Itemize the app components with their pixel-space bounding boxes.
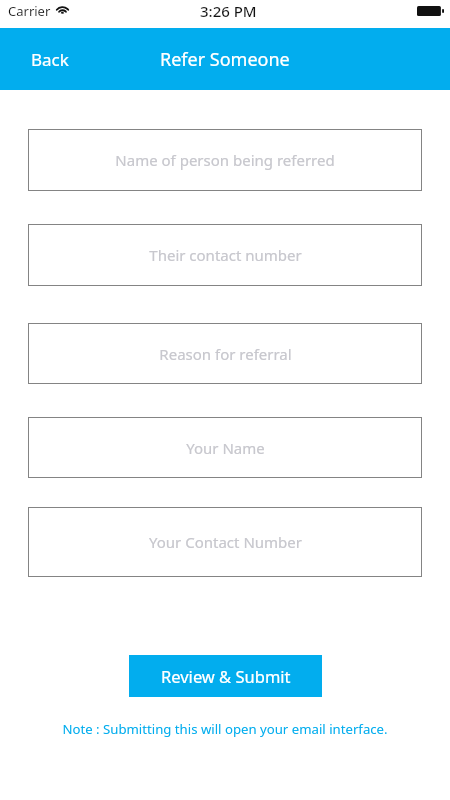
staticText: Name of person being referred (115, 150, 335, 170)
button[interactable]: Reason for referral (28, 323, 422, 384)
staticText: Reason for referral (159, 344, 292, 364)
button[interactable]: Review & Submit (129, 655, 322, 697)
button[interactable]: Back (0, 38, 89, 81)
staticText: Your Name (186, 438, 265, 458)
button[interactable]: Your Name (28, 417, 422, 478)
staticText: 3:26 PM (200, 1, 257, 21)
other: Wi-Fi (54, 2, 71, 14)
other: Battery (417, 6, 444, 16)
button[interactable]: Your Contact Number (28, 507, 422, 577)
staticText: Your Contact Number (149, 532, 302, 552)
staticText: Review & Submit (161, 665, 291, 687)
staticText: Carrier (8, 2, 51, 20)
button[interactable]: Name of person being referred (28, 129, 422, 191)
staticText: Their contact number (149, 245, 302, 265)
button[interactable]: Their contact number (28, 224, 422, 286)
staticText: Back (31, 48, 69, 71)
staticText: Refer Someone (160, 47, 290, 72)
button[interactable]: Note : Submitting this will open your em… (0, 720, 450, 738)
